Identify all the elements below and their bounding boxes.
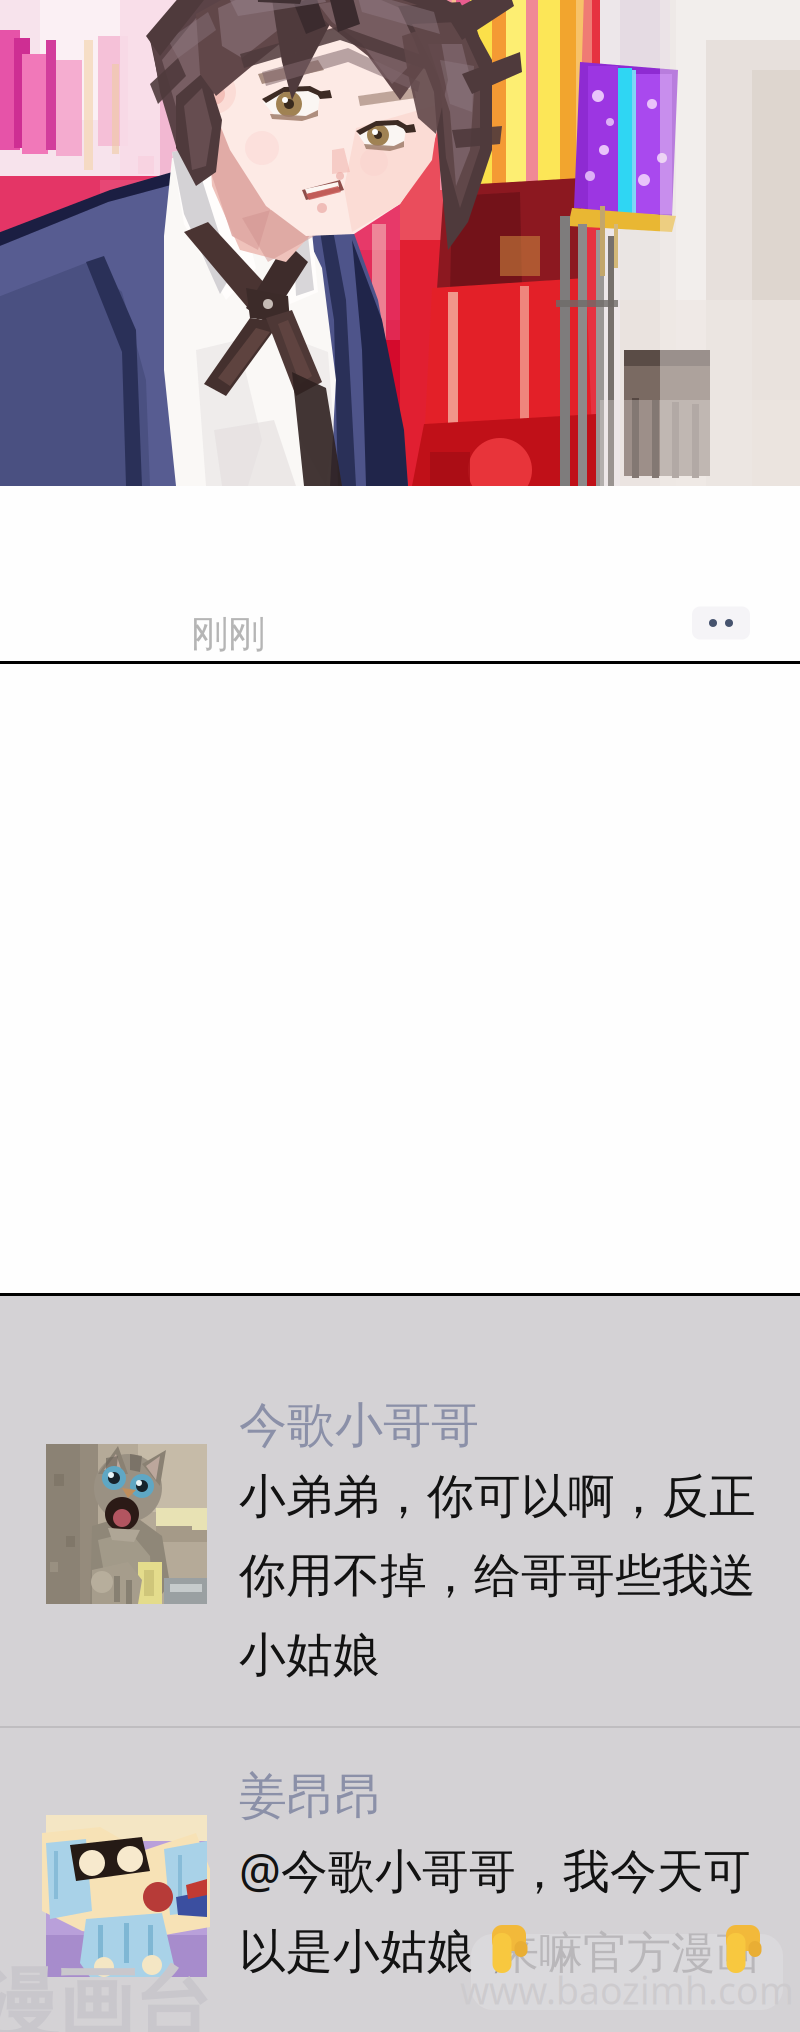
button[interactable]: 姜昂昂 (0, 1667, 800, 1980)
staticText: 今歌小哥哥 (239, 1396, 479, 1455)
staticText: 姜昂昂 (239, 1767, 383, 1826)
staticText: 你用不掉，给哥哥些我送 (239, 1547, 756, 1605)
staticText: 以是小姑娘， (239, 1923, 521, 1980)
staticText: @今歌小哥哥，我今天可 (239, 1839, 751, 1901)
staticText: 来嘛官方漫画 (495, 1926, 759, 1980)
staticText: www.baozimh.com (460, 1965, 794, 2015)
staticText: 刚刚 (191, 611, 265, 657)
button[interactable]: 今歌小哥哥 (0, 1296, 800, 1684)
staticText: 小姑娘 (239, 1627, 380, 1684)
button[interactable]: More options (692, 606, 750, 639)
staticText: 小弟弟，你可以啊，反正 (239, 1468, 756, 1525)
staticText: 漫画台 (0, 1956, 211, 2032)
